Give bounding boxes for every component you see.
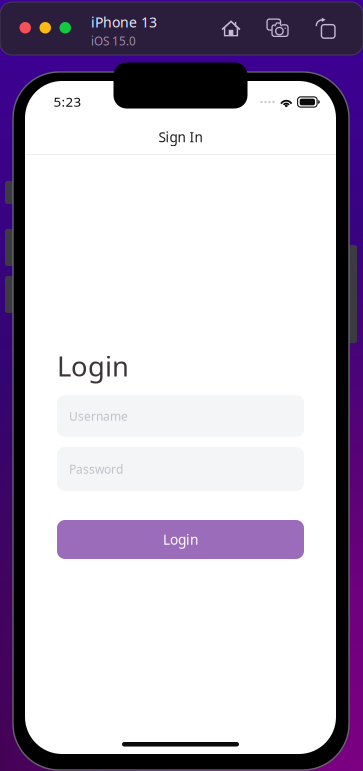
staticText: Login	[57, 347, 129, 385]
button[interactable]: Login	[57, 520, 304, 559]
staticText: Username	[69, 408, 128, 424]
button[interactable]: Username	[57, 395, 304, 437]
staticText: Sign In	[158, 128, 202, 146]
staticText: 5:23	[53, 92, 81, 111]
staticText: Login	[163, 530, 198, 549]
button[interactable]: Password	[57, 447, 304, 491]
button[interactable]: Home	[221, 19, 241, 37]
button[interactable]: Rotate device	[315, 17, 337, 39]
staticText: Password	[69, 461, 123, 477]
staticText: iPhone 13	[91, 12, 157, 32]
staticText: iOS 15.0	[91, 33, 136, 49]
button[interactable]: Screenshot	[267, 18, 289, 38]
